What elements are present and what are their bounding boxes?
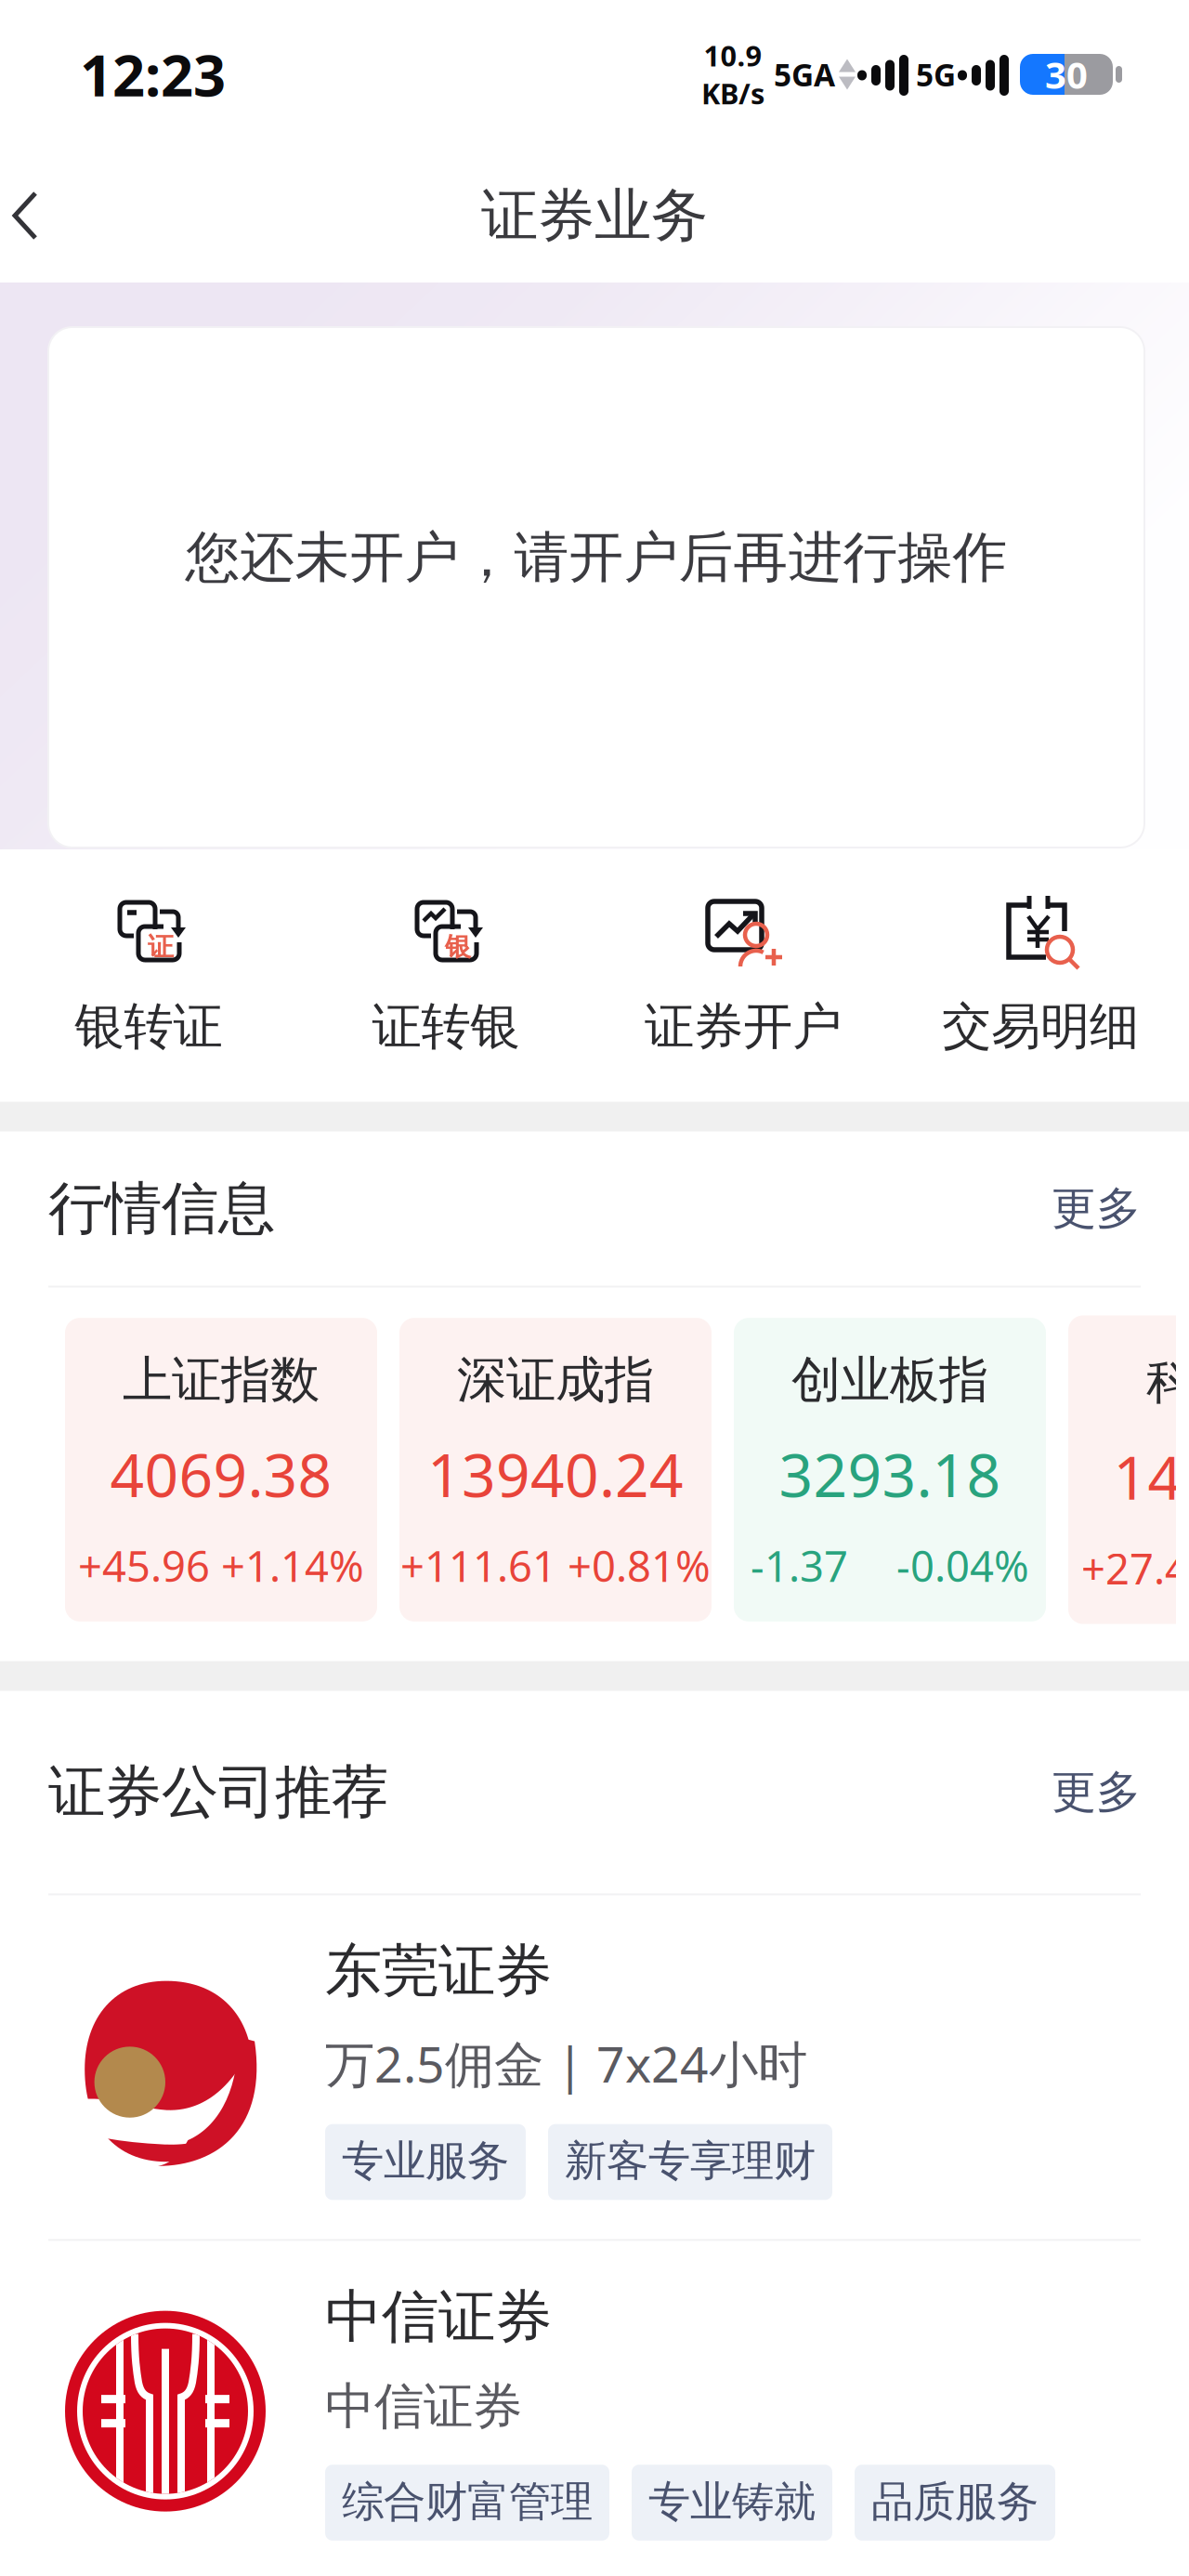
button[interactable]: 银 [297,888,594,1057]
staticText: 专业铸就 [648,2476,816,2528]
staticText: 东莞证券 [325,1936,552,2006]
staticText: 12:23 [80,37,226,112]
staticText: 5G [916,54,956,95]
button[interactable]: 更多 [1024,1168,1141,1249]
button[interactable]: 东莞证券 [0,1895,1189,2239]
staticText: 中信证券 [325,2376,522,2437]
button[interactable]: 交易明细 [892,888,1189,1057]
staticText: 1470.30 [1113,1437,1189,1516]
staticText: 证券业务 [481,181,708,251]
staticText: +45.96 [78,1538,210,1594]
staticText: 证券开户 [645,996,842,1057]
staticText: +111.61 [400,1538,556,1594]
staticText: 3293.18 [779,1435,1001,1514]
staticText: KB/s [701,74,764,112]
staticText: 综合财富管理 [342,2476,593,2528]
staticText: 行情信息 [48,1174,275,1243]
button[interactable]: 返回 [0,171,89,260]
staticText: +0.81% [568,1538,711,1594]
staticText: 新客专享理财 [565,2135,816,2187]
staticText: 4069.38 [110,1435,332,1514]
staticText: 交易明细 [942,996,1139,1057]
staticText: 创业板指 [791,1350,988,1410]
staticText: 上证指数 [123,1350,320,1410]
staticText: 深证成指 [457,1350,654,1410]
button[interactable]: 中信证券 [0,2241,1189,2576]
staticText: 10.9 [704,37,762,74]
staticText: 您还未开户，请开户后再进行操作 [185,524,1007,591]
staticText: 银 [445,931,471,963]
staticText: 5GA [774,54,835,95]
staticText: -1.37 [751,1538,848,1594]
staticText: 30 [1045,50,1088,99]
staticText: 证 [148,931,174,963]
staticText: 专业服务 [342,2135,509,2187]
staticText: 科创50 [1146,1347,1189,1413]
staticText: 更多 [1052,1765,1141,1820]
staticText: +27.45 [1081,1540,1189,1596]
button[interactable]: 证券开户 [594,888,892,1057]
button[interactable]: 证 [0,888,297,1057]
staticText: 证转银 [372,996,520,1057]
staticText: 13940.24 [427,1435,684,1514]
staticText: 证券公司推荐 [48,1757,388,1827]
staticText: 中信证券 [325,2282,552,2352]
staticText: +1.14% [221,1538,364,1594]
staticText: -0.04% [896,1538,1029,1594]
staticText: 更多 [1052,1181,1141,1236]
staticText: 万2.5佣金 | 7x24小时 [325,2030,807,2096]
staticText: 品质服务 [871,2476,1039,2528]
button[interactable]: 更多 [1024,1752,1141,1833]
staticText: 银转证 [75,996,222,1057]
